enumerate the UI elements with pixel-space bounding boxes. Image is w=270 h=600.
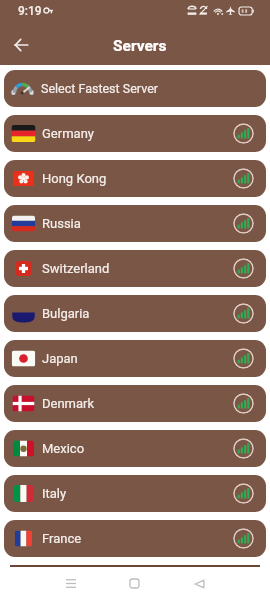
button[interactable]: Select Fastest Server [4,70,266,107]
button[interactable]: Back [185,569,214,598]
button[interactable]: Signal strength [233,168,254,189]
staticText: Denmark [42,396,95,411]
staticText: Select Fastest Server [41,81,158,96]
button[interactable]: Denmark [4,385,266,422]
button[interactable]: Recent apps [56,569,85,598]
button[interactable]: France [4,520,266,557]
button[interactable]: Signal strength [233,438,254,459]
button[interactable]: Mexico [4,430,266,467]
staticText: Russia [42,216,81,231]
staticText: Bulgaria [42,306,90,321]
button[interactable]: Bulgaria [4,295,266,332]
staticText: Japan [42,351,78,366]
button[interactable]: Home [120,569,149,598]
staticText: Mexico [42,441,85,456]
button[interactable]: Signal strength [233,348,254,369]
button[interactable]: Signal strength [233,258,254,279]
button[interactable]: Signal strength [233,213,254,234]
button[interactable]: Signal strength [233,483,254,504]
staticText: 9:19 [18,4,42,18]
staticText: Servers [113,37,167,55]
button[interactable]: Signal strength [233,393,254,414]
button[interactable]: Italy [4,475,266,512]
staticText: Italy [42,486,67,501]
staticText: France [42,531,82,546]
button[interactable]: Germany [4,115,266,152]
staticText: Germany [42,126,94,141]
button[interactable]: Switzerland [4,250,266,287]
button[interactable]: Signal strength [233,303,254,324]
button[interactable]: Signal strength [233,528,254,549]
staticText: Switzerland [42,261,110,276]
button[interactable]: Back [7,31,35,59]
button[interactable]: Signal strength [233,123,254,144]
button[interactable]: Russia [4,205,266,242]
button[interactable]: Japan [4,340,266,377]
staticText: Hong Kong [42,171,107,186]
button[interactable]: Hong Kong [4,160,266,197]
